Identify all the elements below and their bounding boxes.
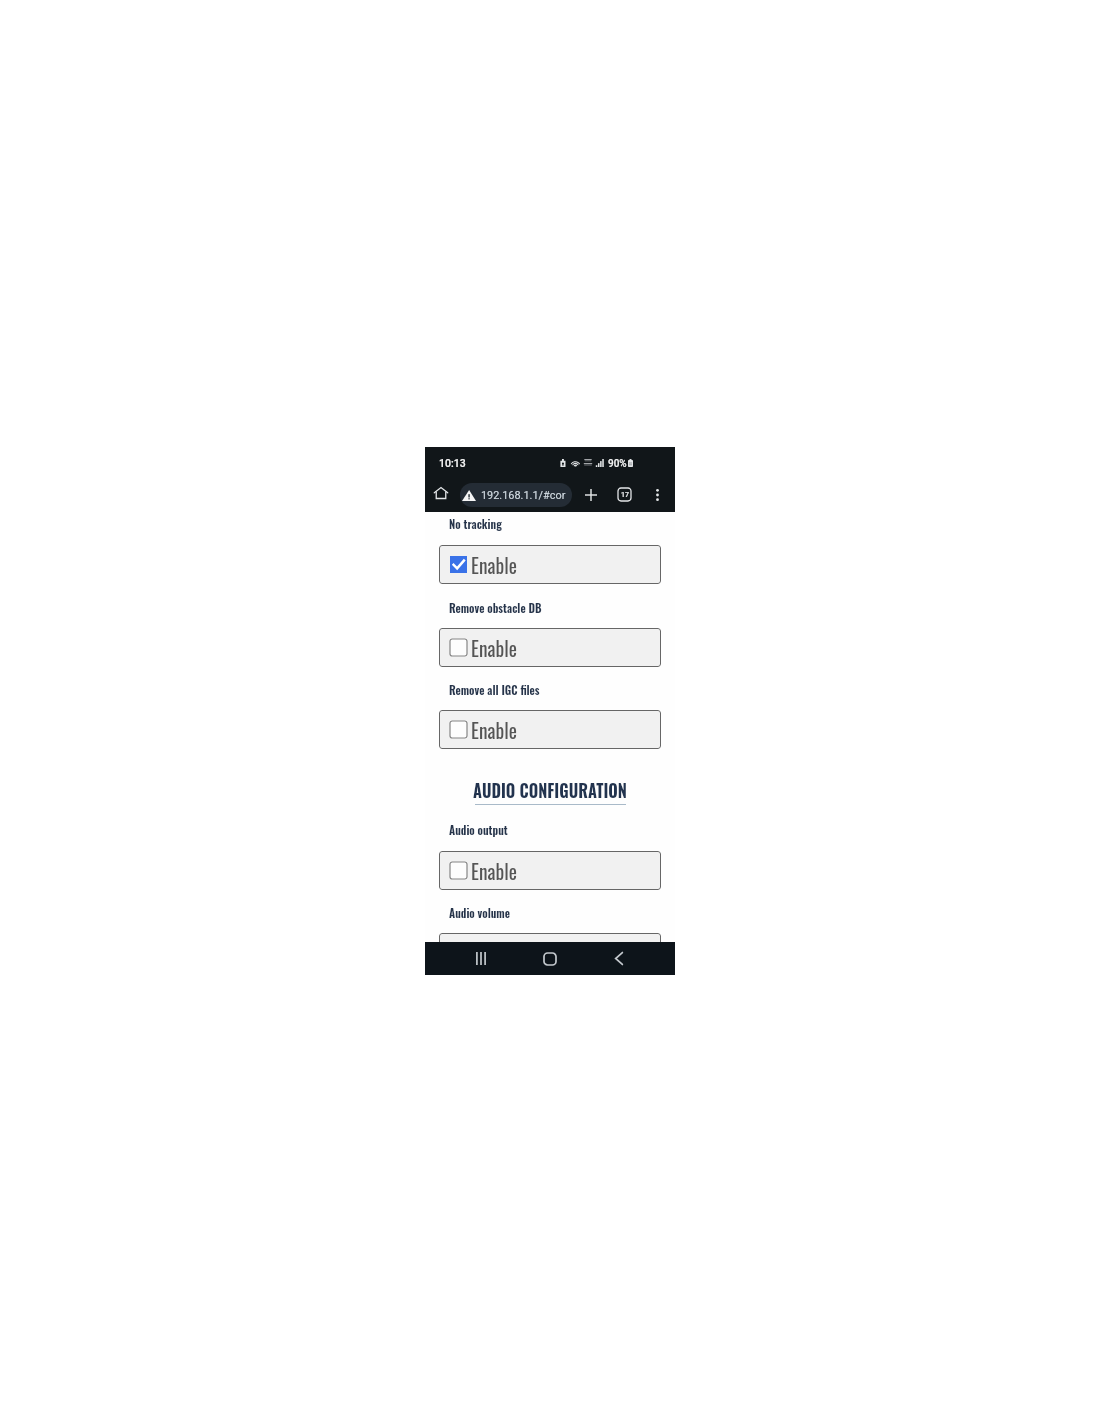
staticText: 10:13 [439, 457, 466, 469]
button[interactable]: Enable [439, 628, 661, 667]
button[interactable]: Home [429, 481, 452, 504]
button[interactable]: Enable [439, 851, 661, 890]
button[interactable]: Recents [462, 942, 500, 975]
staticText: No tracking [449, 515, 502, 533]
button[interactable]: Back [600, 942, 638, 975]
staticText: Remove all IGC files [449, 681, 540, 699]
staticText: 17 [621, 491, 629, 499]
staticText: Audio output [449, 821, 508, 839]
button[interactable]: Enable [439, 545, 661, 584]
staticText: Enable [471, 550, 518, 580]
button[interactable]: Enable [439, 710, 661, 749]
staticText: 192.168.1.1/#cor [481, 489, 566, 502]
button[interactable]: 192.168.1.1/#cor [460, 483, 572, 507]
staticText: Audio volume [449, 904, 510, 922]
button[interactable]: New tab [579, 483, 602, 506]
staticText: AUDIO CONFIGURATION [473, 775, 627, 803]
staticText: Enable [471, 856, 518, 886]
staticText: Enable [471, 938, 518, 968]
button[interactable]: Home [531, 942, 569, 975]
button[interactable]: Tabs [613, 483, 636, 506]
staticText: Enable [471, 715, 518, 745]
button[interactable]: More options [646, 483, 669, 506]
staticText: Remove obstacle DB [449, 599, 542, 617]
button[interactable]: Enable [439, 933, 661, 972]
staticText: Enable [471, 633, 518, 663]
staticText: 90% [608, 458, 627, 470]
